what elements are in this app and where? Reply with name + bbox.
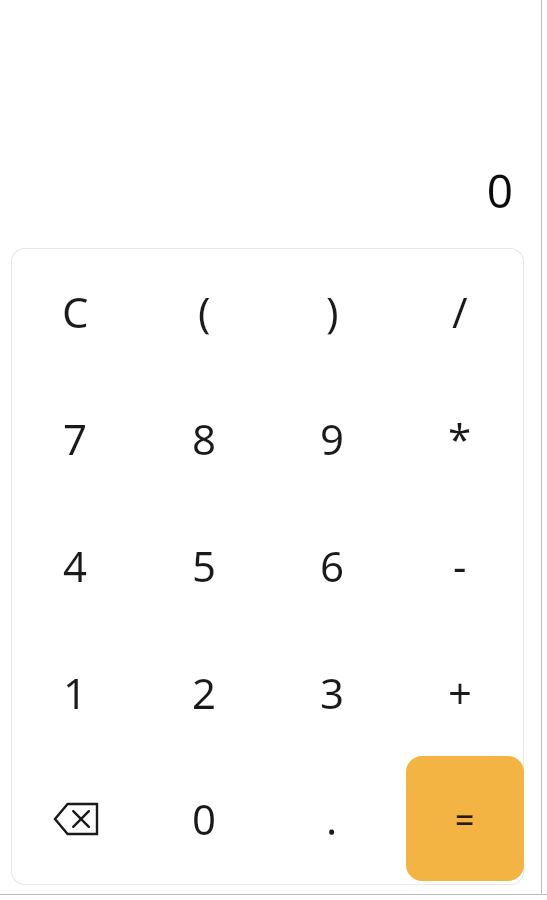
button[interactable]: ) (268, 248, 396, 375)
staticText: ( (198, 283, 211, 340)
staticText: C (62, 283, 89, 340)
staticText: 4 (63, 537, 88, 594)
staticText: = (455, 796, 475, 842)
staticText: 0 (192, 790, 217, 847)
button[interactable]: 1 (11, 629, 140, 756)
staticText: 2 (192, 664, 217, 721)
button[interactable]: 8 (140, 375, 268, 502)
button[interactable]: ( (140, 248, 268, 375)
button[interactable]: * (396, 375, 524, 502)
button[interactable]: . (268, 756, 396, 881)
staticText: 3 (320, 664, 345, 721)
button[interactable]: 6 (268, 502, 396, 629)
staticText: 9 (320, 410, 345, 467)
staticText: + (448, 664, 473, 721)
button[interactable]: 0 (140, 756, 268, 881)
staticText: 8 (192, 410, 217, 467)
button[interactable]: 3 (268, 629, 396, 756)
button[interactable]: 5 (140, 502, 268, 629)
button[interactable]: 7 (11, 375, 140, 502)
button[interactable]: Backspace (11, 756, 140, 881)
staticText: / (452, 283, 468, 340)
staticText: 5 (192, 537, 217, 594)
button[interactable]: - (396, 502, 524, 629)
staticText: * (448, 410, 472, 467)
staticText: 7 (63, 410, 88, 467)
staticText: 6 (320, 537, 345, 594)
staticText: ) (326, 283, 339, 340)
staticText: 1 (63, 664, 88, 721)
button[interactable]: 4 (11, 502, 140, 629)
button[interactable]: + (396, 629, 524, 756)
button[interactable]: 2 (140, 629, 268, 756)
staticText: 0 (486, 159, 513, 222)
staticText: - (453, 537, 467, 594)
staticText: . (326, 790, 338, 847)
button[interactable]: 9 (268, 375, 396, 502)
button[interactable]: = (406, 756, 524, 881)
button[interactable]: / (396, 248, 524, 375)
button[interactable]: C (11, 248, 140, 375)
